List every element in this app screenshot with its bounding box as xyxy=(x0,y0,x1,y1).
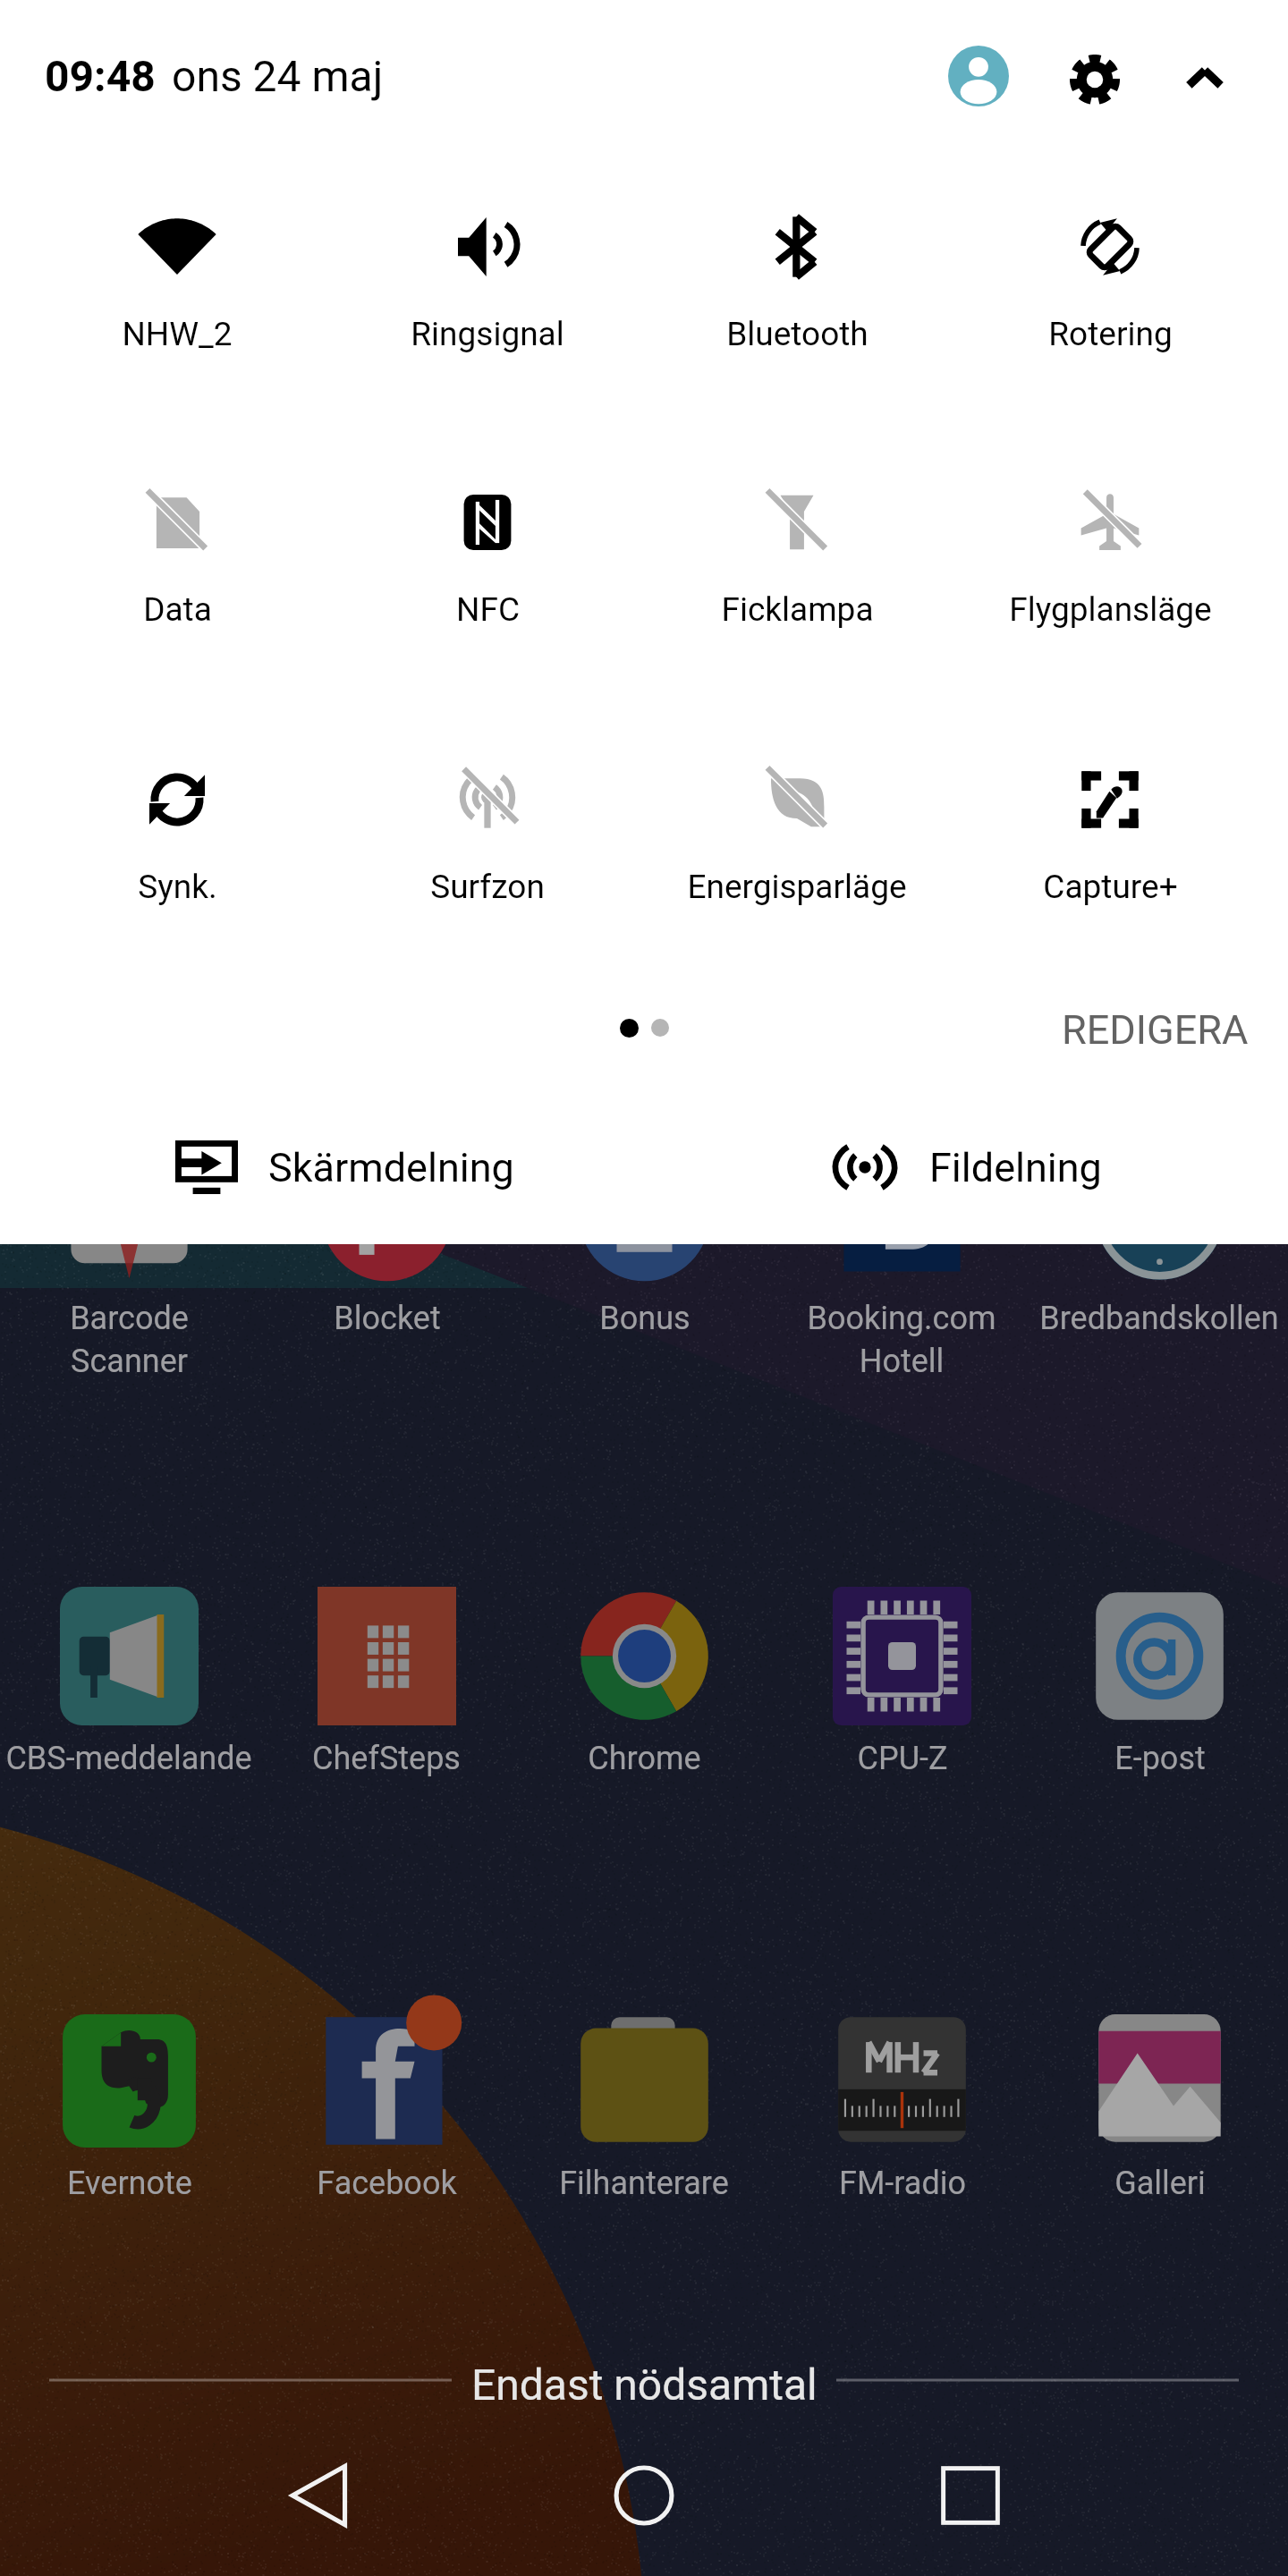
button[interactable]: Ringsignal xyxy=(335,194,640,364)
staticText: E-post xyxy=(1114,1740,1206,1777)
button[interactable]: Filhanterare xyxy=(515,2012,773,2202)
button[interactable]: Galleri xyxy=(1030,2012,1288,2202)
button[interactable]: Ficklampa xyxy=(645,470,949,640)
button[interactable]: Barcode Scanner xyxy=(0,1147,258,1380)
button[interactable]: Flygplansläge xyxy=(958,470,1262,640)
button[interactable]: NFC xyxy=(335,470,640,640)
staticText: Synk. xyxy=(138,868,217,906)
staticText: Bluetooth xyxy=(726,315,869,353)
staticText: Ficklampa xyxy=(721,590,874,629)
button[interactable]: ChefSteps xyxy=(258,1587,515,1777)
staticText: Surfzon xyxy=(430,868,545,906)
button[interactable]: Synk. xyxy=(25,747,329,917)
staticText: CBS-meddelande xyxy=(5,1740,252,1777)
staticText: ons 24 maj xyxy=(172,51,384,101)
button[interactable]: CPU-Z xyxy=(773,1587,1030,1777)
button[interactable]: CBS-meddelande xyxy=(0,1587,258,1777)
staticText: Evernote xyxy=(67,2165,192,2202)
button[interactable]: Blocket xyxy=(258,1147,515,1337)
button[interactable]: E-post xyxy=(1030,1587,1288,1777)
button[interactable]: Bredbandskollen xyxy=(1030,1147,1288,1337)
button[interactable]: Rotering xyxy=(958,194,1262,364)
staticText: Flygplansläge xyxy=(1009,590,1212,629)
button[interactable]: Bonus xyxy=(515,1147,773,1337)
button[interactable]: Bluetooth xyxy=(645,194,949,364)
button[interactable]: Fildelning xyxy=(833,1131,1102,1203)
staticText: Energisparläge xyxy=(687,868,907,906)
button[interactable]: Settings xyxy=(1041,26,1148,133)
button[interactable]: Capture+ xyxy=(958,747,1262,917)
staticText: Ringsignal xyxy=(411,315,564,353)
button[interactable]: Chrome xyxy=(515,1587,773,1777)
staticText: 09:48 xyxy=(45,51,156,101)
button[interactable]: Recents xyxy=(863,2442,1078,2549)
button[interactable]: Evernote xyxy=(0,2012,258,2202)
staticText: NFC xyxy=(456,590,520,629)
staticText: FM-radio xyxy=(839,2165,966,2202)
button[interactable]: FM-radio xyxy=(773,2012,1030,2202)
button[interactable]: Energisparläge xyxy=(645,747,949,917)
staticText: Bredbandskollen xyxy=(1039,1300,1279,1337)
staticText: ChefSteps xyxy=(312,1740,461,1777)
staticText: Galleri xyxy=(1114,2165,1206,2202)
staticText: Bonus xyxy=(599,1300,691,1337)
button[interactable]: Surfzon xyxy=(335,747,640,917)
button[interactable]: NHW_2 xyxy=(25,194,329,364)
staticText: Barcode Scanner xyxy=(70,1300,189,1380)
staticText: Booking.com Hotell xyxy=(807,1300,996,1380)
button[interactable]: Back xyxy=(212,2442,427,2549)
button[interactable]: Data xyxy=(25,470,329,640)
button[interactable]: User profile xyxy=(925,22,1032,130)
staticText: Rotering xyxy=(1048,315,1173,353)
staticText: Fildelning xyxy=(929,1144,1102,1191)
staticText: Chrome xyxy=(588,1740,701,1777)
button[interactable]: Facebook xyxy=(258,2012,515,2202)
staticText: NHW_2 xyxy=(122,315,233,353)
staticText: Blocket xyxy=(334,1300,441,1337)
staticText: Skärmdelning xyxy=(268,1144,514,1191)
staticText: Endast nödsamtal xyxy=(471,2360,818,2410)
button[interactable]: Collapse xyxy=(1151,28,1258,135)
button[interactable]: Skärmdelning xyxy=(175,1131,514,1203)
staticText: Capture+ xyxy=(1043,868,1178,906)
staticText: Facebook xyxy=(317,2165,457,2202)
staticText: Filhanterare xyxy=(559,2165,729,2202)
staticText: CPU-Z xyxy=(857,1740,948,1777)
button[interactable]: Home xyxy=(537,2442,751,2549)
button[interactable]: Booking.com Hotell xyxy=(773,1147,1030,1380)
staticText: REDIGERA xyxy=(1062,1006,1249,1049)
button[interactable]: REDIGERA xyxy=(1018,992,1288,1063)
staticText: Data xyxy=(143,590,212,629)
